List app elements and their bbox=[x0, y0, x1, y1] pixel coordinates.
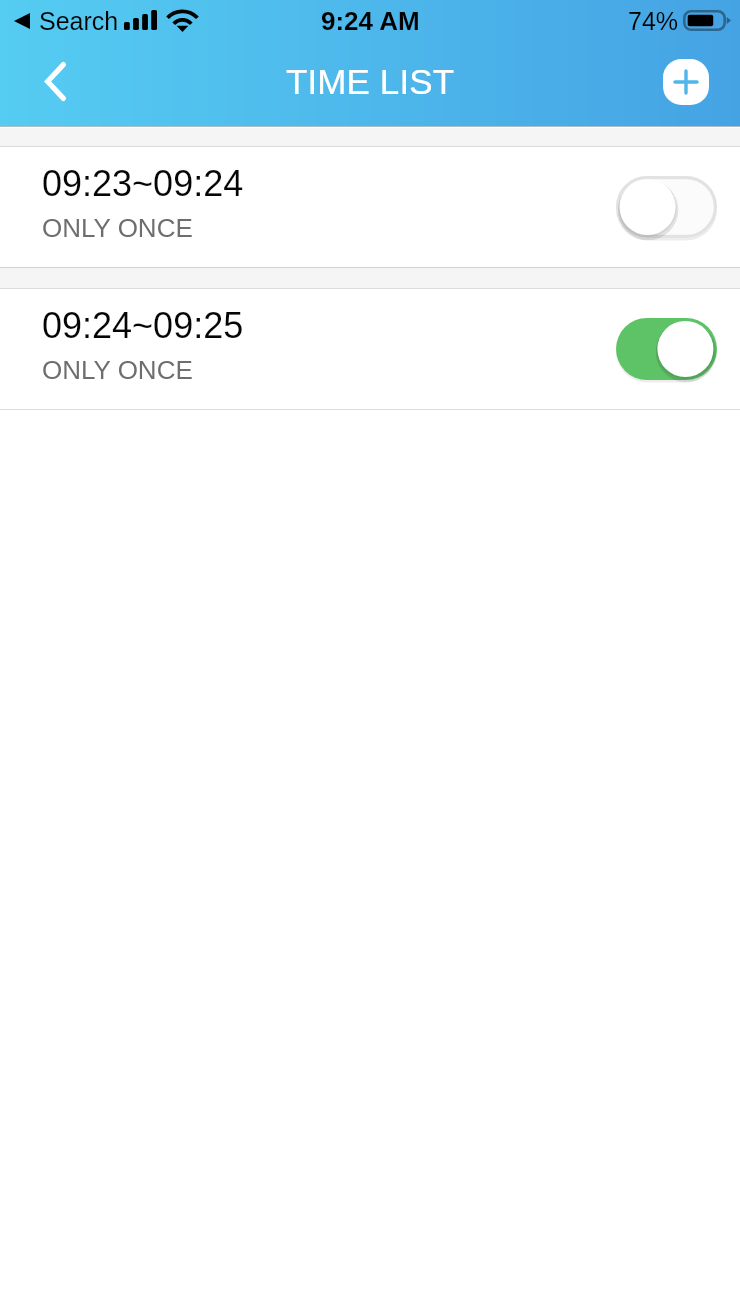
button[interactable]: Back bbox=[24, 51, 86, 111]
button[interactable]: Alarm on bbox=[616, 318, 717, 380]
staticText: ONLY ONCE bbox=[42, 213, 193, 242]
staticText: 74% bbox=[628, 7, 679, 35]
staticText: 09:23~09:24 bbox=[42, 163, 244, 203]
button[interactable]: Alarm off bbox=[616, 176, 717, 238]
staticText: ONLY ONCE bbox=[42, 355, 193, 384]
button[interactable]: 09:24~09:25 bbox=[0, 289, 740, 409]
staticText: Search bbox=[39, 7, 119, 35]
staticText: TIME LIST bbox=[286, 62, 455, 101]
button[interactable]: Add bbox=[663, 59, 709, 105]
staticText: 9:24 AM bbox=[321, 6, 420, 35]
staticText: 09:24~09:25 bbox=[42, 305, 244, 345]
button[interactable]: 09:23~09:24 bbox=[0, 147, 740, 267]
